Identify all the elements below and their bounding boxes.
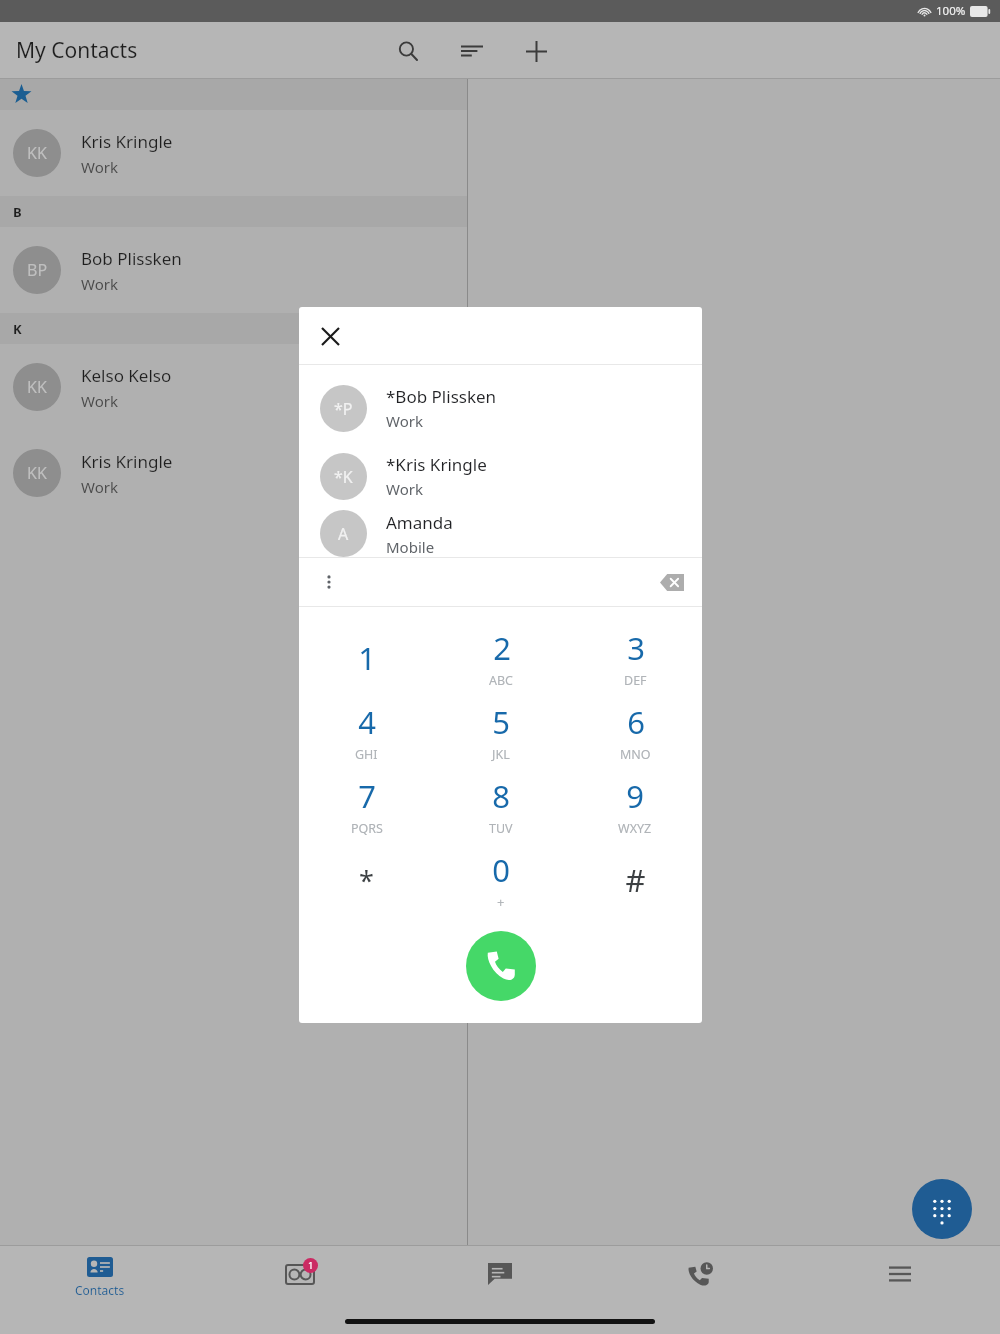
staticText: Work [81,157,118,177]
staticText: B [13,203,22,221]
button[interactable]: Voicemail, 1 new [200,1246,400,1308]
staticText: PQRS [351,820,383,837]
button[interactable]: 8 [434,769,568,843]
staticText: Bob Plissken [81,247,182,270]
staticText: KK [27,376,47,398]
staticText: 5 [492,701,510,743]
button[interactable]: 7 [299,769,434,843]
button[interactable]: KK [0,344,467,430]
staticText: 0 [492,849,510,891]
staticText: Work [386,411,423,431]
staticText: 1 [358,637,376,679]
staticText: # [625,859,646,901]
button[interactable]: 1 [299,621,434,695]
staticText: Work [81,391,118,411]
staticText: My Contacts [16,36,138,65]
staticText: GHI [355,746,378,763]
staticText: 100% [936,3,966,19]
staticText: *K [334,466,353,488]
button[interactable]: KK [0,430,467,516]
staticText: * [359,862,374,899]
button[interactable]: Search [388,31,428,71]
button[interactable]: Open dialpad [912,1179,972,1239]
button[interactable]: A [299,510,702,557]
button[interactable]: Sort [452,31,492,71]
staticText: 1 [308,1259,314,1272]
staticText: WXYZ [618,820,652,837]
staticText: Contacts [75,1282,125,1298]
staticText: + [497,893,505,911]
staticText: TUV [489,820,513,837]
staticText: KK [27,142,47,164]
staticText: 2 [493,627,511,669]
staticText: Work [386,479,423,499]
button[interactable]: Call history [600,1246,800,1308]
button[interactable]: 6 [568,695,702,769]
button[interactable]: *K [299,442,702,510]
button[interactable]: 3 [568,621,702,695]
staticText: DEF [624,672,647,689]
staticText: *Kris Kringle [386,453,487,476]
staticText: *P [334,398,353,420]
button[interactable]: Call [466,931,536,1001]
staticText: ABC [489,672,514,689]
staticText: Mobile [386,537,435,557]
staticText: Kelso Kelso [81,364,172,387]
staticText: Kris Kringle [81,130,173,153]
staticText: 3 [627,627,645,669]
staticText: Work [81,477,118,497]
staticText: Amanda [386,511,453,534]
button[interactable]: 2 [434,621,568,695]
staticText: 7 [358,775,376,817]
button[interactable]: * [299,843,434,917]
button[interactable]: BP [0,227,467,313]
button[interactable]: 4 [299,695,434,769]
staticText: JKL [492,746,510,763]
button[interactable]: 0 [434,843,568,917]
button[interactable]: 9 [568,769,702,843]
button[interactable]: 5 [434,695,568,769]
staticText: 4 [358,701,376,743]
staticText: BP [27,259,48,281]
button[interactable]: Contacts [0,1246,200,1308]
staticText: 8 [492,775,510,817]
staticText: KK [27,462,47,484]
button[interactable]: More [800,1246,1000,1308]
button[interactable]: KK [0,110,467,196]
staticText: Work [81,274,118,294]
button[interactable]: Messages [400,1246,600,1308]
staticText: Kris Kringle [81,450,173,473]
staticText: K [13,320,22,338]
staticText: MNO [620,746,651,763]
staticText: A [338,523,349,545]
button[interactable]: # [568,843,702,917]
button[interactable]: *P [299,374,702,442]
button[interactable]: Close [310,316,350,356]
button[interactable]: Backspace [652,562,692,602]
button[interactable]: More options [311,564,347,600]
staticText: *Bob Plissken [386,385,497,408]
button[interactable]: Add contact [516,31,556,71]
staticText: 6 [627,701,645,743]
staticText: 9 [626,775,644,817]
